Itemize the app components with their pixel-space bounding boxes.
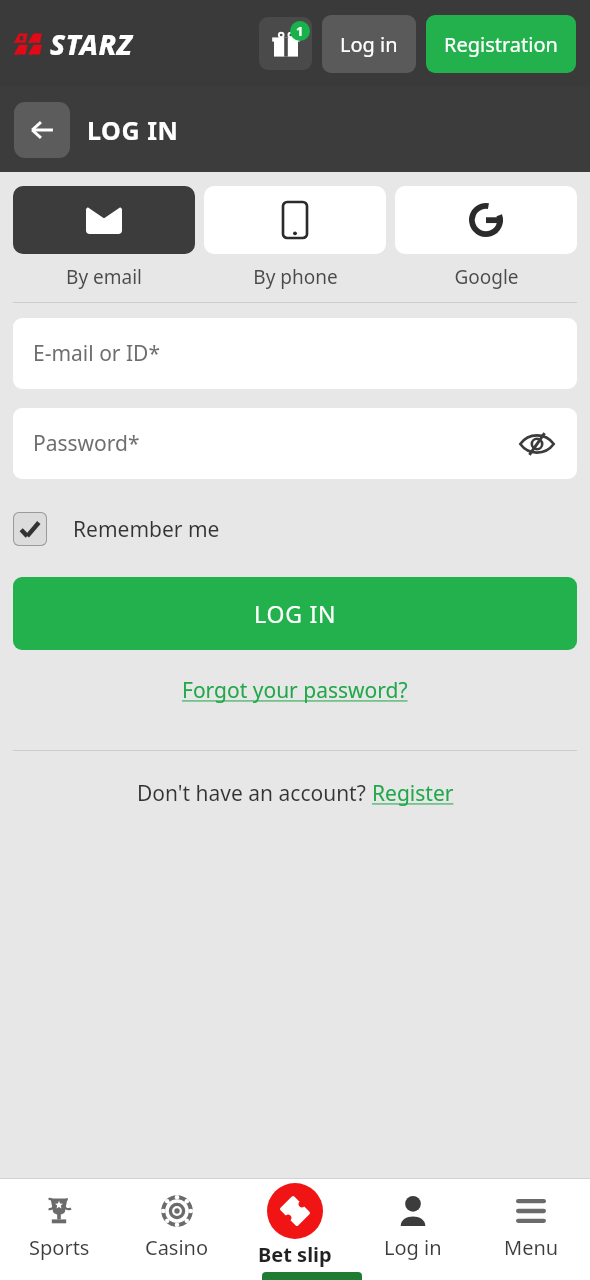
button[interactable]: Bet slip — [236, 1178, 354, 1280]
staticText: Don't have an account? — [137, 779, 372, 808]
button[interactable]: Casino — [118, 1178, 236, 1280]
staticText: Registration — [444, 31, 558, 58]
staticText: By phone — [253, 264, 338, 290]
staticText: Casino — [145, 1234, 209, 1261]
button[interactable]: Show password — [517, 424, 557, 464]
staticText: Log in — [340, 31, 398, 58]
staticText: STARZ — [50, 25, 133, 63]
staticText: LOG IN — [254, 598, 337, 629]
staticText: By email — [66, 264, 142, 290]
button[interactable]: Log in — [354, 1178, 472, 1280]
button[interactable]: Password* — [13, 408, 577, 479]
staticText: Google — [454, 264, 519, 290]
staticText: Register — [372, 779, 454, 808]
button[interactable]: By phone — [204, 186, 386, 290]
button[interactable]: Register — [372, 779, 454, 808]
button[interactable]: Gifts, 1 new — [259, 17, 312, 70]
staticText: LOG IN — [87, 113, 179, 147]
button[interactable]: LOG IN — [13, 577, 577, 650]
staticText: Forgot your password? — [182, 676, 408, 705]
staticText: Sports — [29, 1234, 90, 1261]
button[interactable]: Forgot your password? — [176, 674, 414, 707]
staticText: Password* — [33, 429, 140, 458]
staticText: Bet slip — [258, 1241, 332, 1268]
staticText: 1 — [296, 22, 304, 40]
button[interactable]: Google — [395, 186, 577, 290]
button[interactable]: Registration — [426, 15, 576, 73]
button[interactable]: Sports — [0, 1178, 118, 1280]
button[interactable]: E-mail or ID* — [13, 318, 577, 389]
button[interactable]: By email — [13, 186, 195, 290]
staticText: Menu — [504, 1234, 559, 1261]
button[interactable]: Menu — [472, 1178, 590, 1280]
staticText: Log in — [384, 1234, 442, 1261]
button[interactable]: Back — [14, 102, 70, 158]
staticText: Remember me — [73, 515, 220, 544]
button[interactable]: Log in — [322, 15, 416, 73]
button[interactable]: Remember me — [13, 512, 220, 546]
staticText: E-mail or ID* — [33, 339, 161, 368]
